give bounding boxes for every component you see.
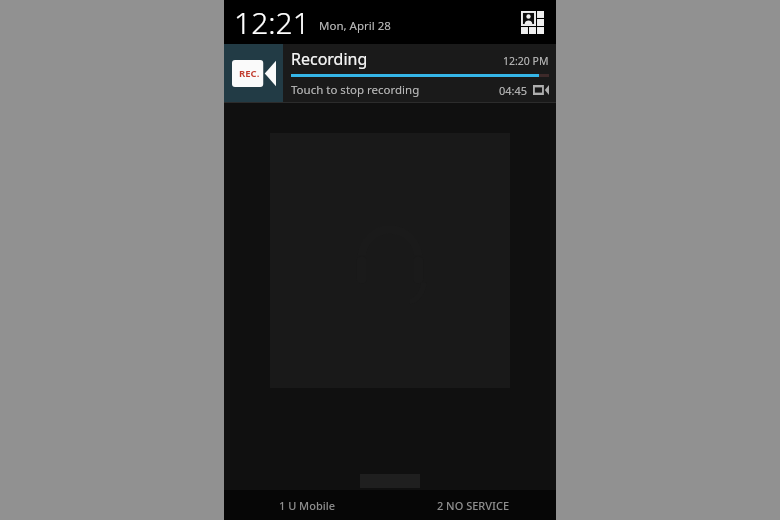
staticText: Touch to stop recording: [291, 82, 420, 98]
staticText: 12:20 PM: [503, 54, 549, 68]
button[interactable]: REC.: [224, 44, 556, 102]
staticText: Recording: [291, 48, 368, 70]
staticText: REC.: [239, 67, 260, 80]
staticText: 04:45: [499, 83, 528, 98]
staticText: 1 U Mobile: [224, 498, 390, 513]
staticText: 12:21: [234, 2, 310, 43]
staticText: 2 NO SERVICE: [390, 498, 556, 513]
button[interactable]: Multi window: [514, 4, 550, 40]
staticText: Mon, April 28: [319, 18, 391, 34]
